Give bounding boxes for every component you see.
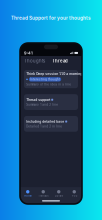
button[interactable]: Including detailed base: [24, 116, 78, 132]
staticText: Thread Support for your thoughts: [11, 15, 91, 21]
staticText: Including detailed base: [26, 120, 64, 123]
staticText: Detailed 1 and 2 in line: [26, 125, 62, 128]
staticText: Summary of the idea in a line: [26, 83, 71, 86]
staticText: Think Deep session 1.1.0 a morning: [26, 72, 82, 76]
button[interactable]: Think Deep session 1.1.0 a morning: [24, 70, 78, 88]
staticText: Home: [24, 194, 31, 197]
staticText: You: [72, 194, 77, 197]
button[interactable]: Threads: [35, 190, 51, 197]
staticText: Thread: [52, 58, 68, 64]
staticText: Library: [55, 194, 63, 197]
button[interactable]: Thoughts: [24, 58, 45, 64]
staticText: 9:41: [24, 50, 33, 55]
button[interactable]: Thread: [52, 58, 68, 64]
staticText: Thread support: [26, 98, 50, 102]
button[interactable]: Home: [20, 190, 35, 197]
staticText: Threads: [38, 194, 48, 197]
button[interactable]: Thread support: [24, 94, 78, 110]
button[interactable]: You: [66, 190, 82, 197]
staticText: Thoughts: [24, 58, 45, 64]
button[interactable]: Library: [51, 190, 66, 197]
staticText: Summary 1 and 2 line: [26, 103, 58, 106]
staticText: Interesting thought: [30, 78, 60, 81]
